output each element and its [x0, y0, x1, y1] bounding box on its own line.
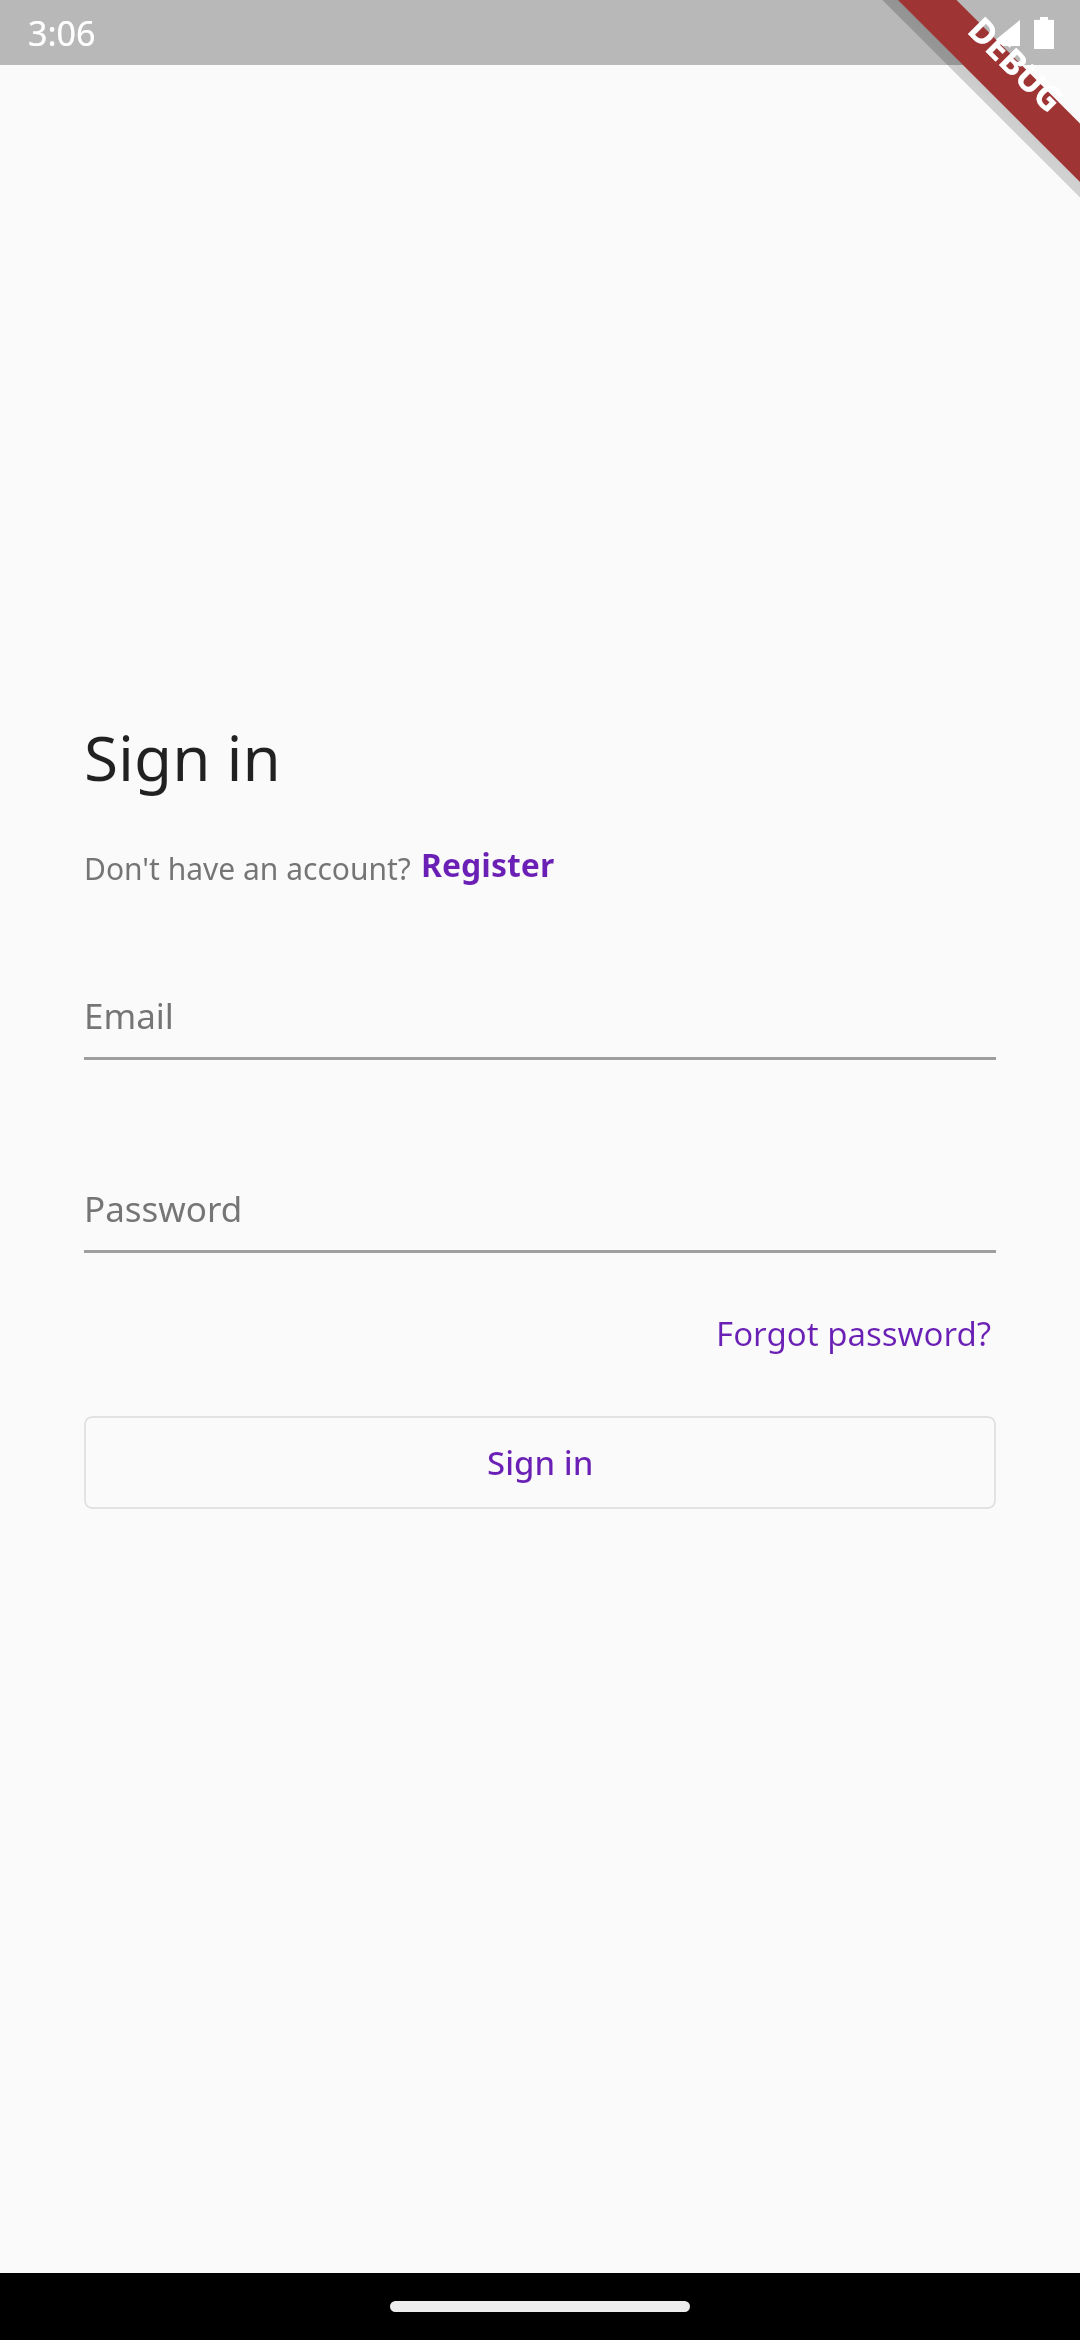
staticText: Sign in [487, 1440, 594, 1485]
button[interactable]: Forgot password? [712, 1305, 996, 1362]
staticText: Register [421, 843, 555, 887]
staticText: Don't have an account? [84, 848, 419, 889]
staticText: Email [84, 992, 174, 1040]
button[interactable]: Register [419, 841, 557, 889]
button[interactable]: Email [84, 975, 996, 1060]
button[interactable]: Password [84, 1168, 996, 1253]
staticText: 3:06 [28, 10, 96, 56]
staticText: Forgot password? [716, 1311, 992, 1356]
staticText: Sign in [84, 715, 281, 799]
staticText: Password [84, 1185, 243, 1233]
button[interactable]: Sign in [84, 1416, 996, 1509]
staticText: DEBUG [959, 6, 1074, 122]
